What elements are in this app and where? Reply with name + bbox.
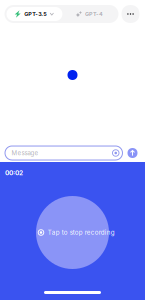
staticText: Message bbox=[11, 149, 38, 157]
staticText: Tap to stop recording bbox=[48, 229, 115, 236]
button[interactable]: Tap to stop recording bbox=[0, 196, 145, 269]
button[interactable]: More options bbox=[121, 5, 139, 23]
staticText: GPT-3.5 bbox=[24, 11, 46, 17]
staticText: 00:02 bbox=[5, 169, 23, 177]
button[interactable]: GPT-4 bbox=[62, 7, 111, 21]
button[interactable]: Send bbox=[127, 148, 137, 158]
button[interactable]: GPT-3.5 bbox=[6, 7, 62, 21]
button[interactable]: Record voice message bbox=[112, 150, 119, 156]
staticText: GPT-4 bbox=[85, 11, 103, 17]
